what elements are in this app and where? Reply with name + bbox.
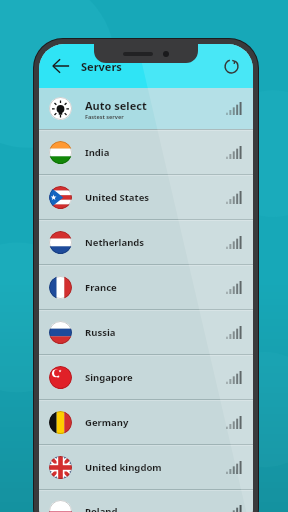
staticText: India xyxy=(85,146,110,159)
button[interactable]: Netherlands xyxy=(39,221,253,264)
staticText: France xyxy=(85,281,117,294)
staticText: Singapore xyxy=(85,371,133,384)
staticText: Fastest server xyxy=(85,113,124,120)
staticText: United kingdom xyxy=(85,461,162,474)
button[interactable]: United kingdom xyxy=(39,446,253,489)
button[interactable]: France xyxy=(39,266,253,309)
staticText: Russia xyxy=(85,326,116,339)
button[interactable]: Singapore xyxy=(39,356,253,399)
button[interactable]: Germany xyxy=(39,401,253,444)
staticText: Poland xyxy=(85,505,118,512)
staticText: Netherlands xyxy=(85,236,145,249)
staticText: Auto select xyxy=(85,98,147,113)
button[interactable]: Auto select xyxy=(39,88,253,129)
button[interactable]: Russia xyxy=(39,311,253,354)
button[interactable]: Poland xyxy=(39,491,253,512)
button[interactable]: Refresh xyxy=(218,53,244,79)
staticText: Germany xyxy=(85,416,129,429)
staticText: United States xyxy=(85,191,150,204)
button[interactable]: United States xyxy=(39,176,253,219)
button[interactable]: India xyxy=(39,131,253,174)
button[interactable]: Back xyxy=(47,52,75,80)
staticText: Servers xyxy=(81,59,122,74)
